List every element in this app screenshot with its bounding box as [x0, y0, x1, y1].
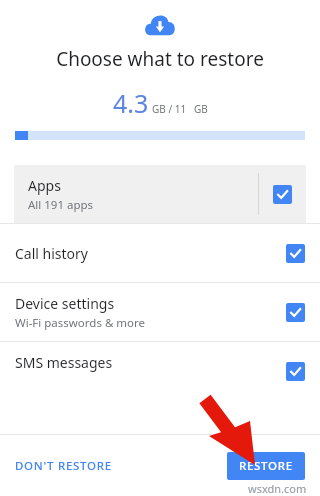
other: Checked	[286, 244, 305, 263]
staticText: Device settings	[15, 294, 115, 313]
staticText: Apps	[28, 176, 61, 195]
staticText: wsxdn.com	[248, 481, 307, 496]
other: Checked	[286, 303, 305, 322]
button[interactable]: RESTORE	[227, 452, 305, 480]
staticText: SMS messages	[15, 353, 113, 372]
staticText: DON'T RESTORE	[15, 458, 112, 474]
button[interactable]: Call history	[0, 224, 320, 282]
other: Checked	[273, 185, 292, 204]
staticText: Choose what to restore	[0, 46, 320, 72]
staticText: All 191 apps	[28, 197, 94, 213]
staticText: RESTORE	[239, 458, 293, 474]
staticText: Call history	[15, 244, 88, 263]
button[interactable]: Apps	[14, 165, 306, 223]
button[interactable]: Device settings	[0, 283, 320, 341]
staticText: 4.3	[113, 86, 149, 120]
button[interactable]: SMS messages	[0, 342, 320, 400]
button[interactable]: DON'T RESTORE	[13, 452, 114, 480]
staticText: GB / 11 GB	[152, 102, 208, 116]
other: Checked	[286, 362, 305, 381]
other: Restore from cloud	[144, 13, 176, 37]
staticText: Wi-Fi passwords & more	[15, 315, 146, 331]
